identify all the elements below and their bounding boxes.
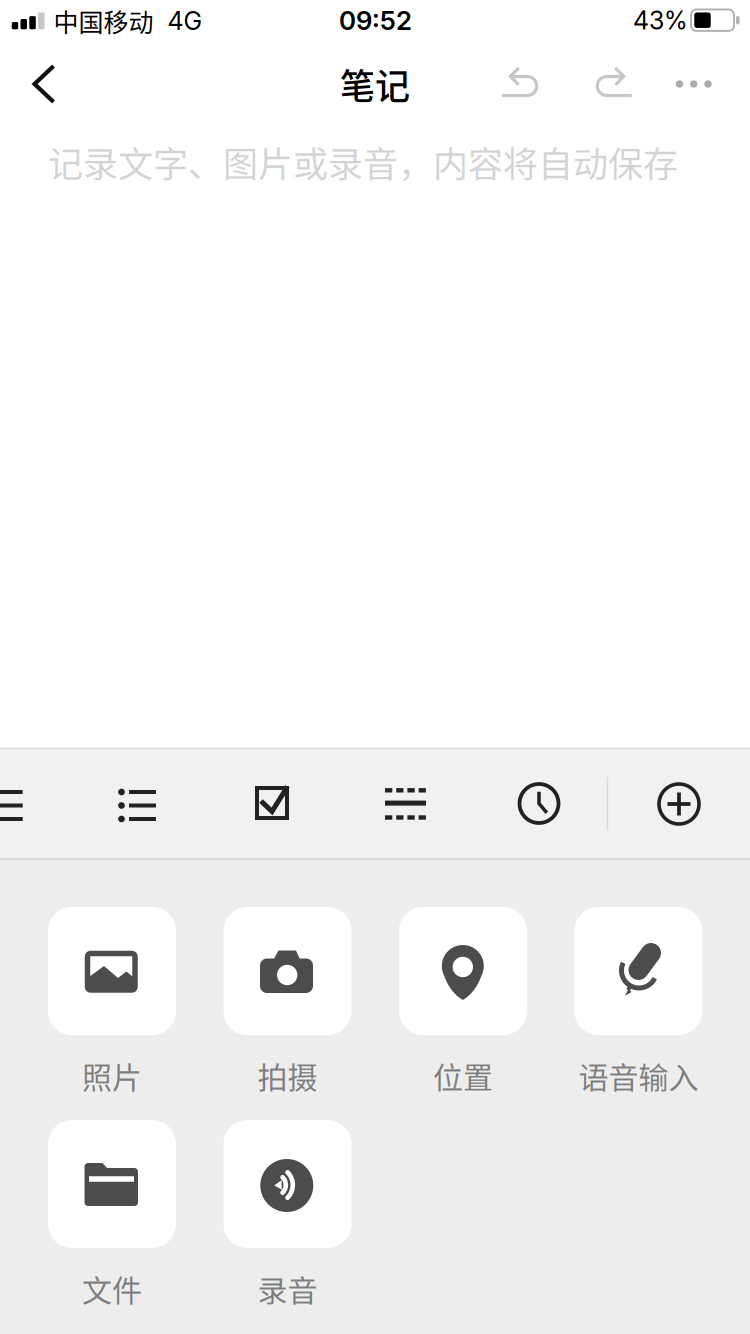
button[interactable]: 录音 — [213, 1120, 361, 1325]
button[interactable]: 语音输入 — [564, 907, 712, 1112]
staticText: 语音输入 — [578, 1054, 698, 1097]
staticText: 位置 — [433, 1054, 493, 1097]
button[interactable]: Bulleted list — [87, 748, 187, 860]
button[interactable]: Undo — [489, 52, 549, 112]
staticText: 中国移动 — [53, 3, 153, 39]
button[interactable]: Back — [12, 52, 76, 116]
staticText: 4G — [167, 6, 202, 36]
button[interactable]: 照片 — [38, 907, 186, 1112]
staticText: 笔记 — [340, 59, 410, 109]
staticText: 记录文字、图片或录音，内容将自动保存 — [48, 137, 678, 187]
staticText: 43% — [633, 5, 688, 36]
staticText: 照片 — [82, 1054, 142, 1097]
button[interactable]: Divider — [355, 748, 455, 860]
button[interactable]: 文件 — [38, 1120, 186, 1325]
button[interactable]: 位置 — [389, 907, 537, 1112]
button[interactable]: 拍摄 — [213, 907, 361, 1112]
button[interactable]: Insert — [629, 748, 729, 860]
staticText: 录音 — [257, 1267, 317, 1310]
button[interactable]: Checklist — [222, 747, 322, 859]
button[interactable]: Redo — [585, 52, 645, 112]
button[interactable]: More — [664, 54, 724, 114]
staticText: 拍摄 — [257, 1054, 317, 1097]
button[interactable]: Formatting — [0, 748, 46, 860]
button[interactable]: Timestamp — [489, 747, 589, 859]
staticText: 文件 — [82, 1267, 142, 1310]
staticText: 09:52 — [339, 5, 412, 36]
